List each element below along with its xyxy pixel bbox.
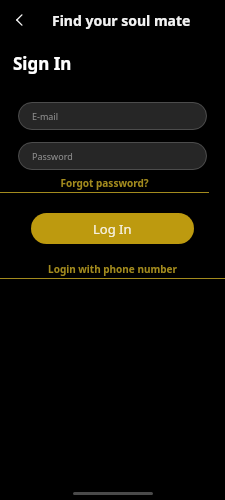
- staticText: Login with phone number: [48, 262, 177, 276]
- staticText: Password: [32, 150, 73, 162]
- button[interactable]: E-mail: [18, 102, 207, 130]
- button[interactable]: Back: [4, 4, 36, 36]
- staticText: Forgot password?: [60, 176, 149, 190]
- button[interactable]: Password: [18, 142, 207, 170]
- button[interactable]: Log In: [31, 213, 194, 244]
- staticText: Log In: [93, 220, 132, 238]
- button[interactable]: Forgot password?: [0, 176, 209, 193]
- staticText: Sign In: [13, 52, 72, 75]
- staticText: E-mail: [32, 110, 59, 122]
- staticText: Find your soul mate: [52, 11, 191, 30]
- button[interactable]: Login with phone number: [0, 262, 225, 279]
